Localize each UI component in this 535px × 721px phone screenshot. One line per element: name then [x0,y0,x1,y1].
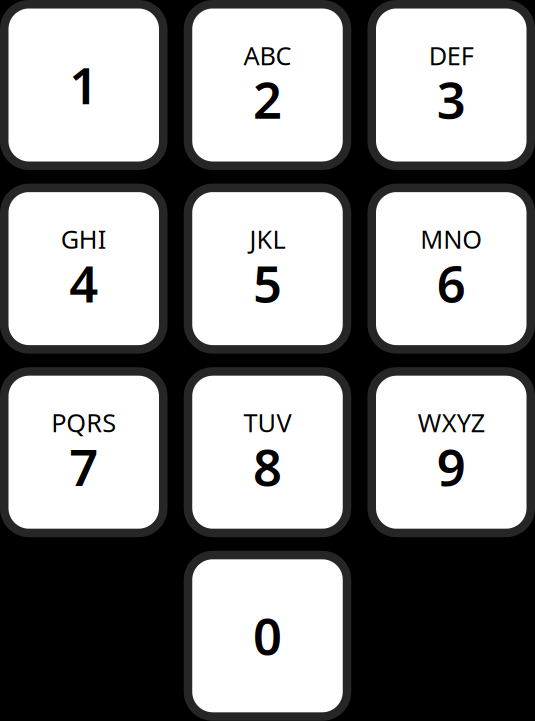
button[interactable]: TUV [184,367,351,537]
button[interactable]: 1 [0,0,167,170]
button[interactable]: GHI [0,184,167,354]
staticText: 3 [437,65,466,133]
button[interactable]: PQRS [0,367,167,537]
button[interactable]: MNO [367,184,535,354]
button[interactable]: ABC [184,0,351,170]
staticText: 8 [253,433,282,500]
staticText: 6 [437,249,466,316]
staticText: PQRS [51,406,116,439]
staticText: 2 [253,65,282,133]
button[interactable]: 0 [184,551,351,721]
staticText: 5 [253,249,282,316]
button[interactable]: WXYZ [367,367,535,537]
staticText: GHI [61,222,107,256]
button[interactable]: JKL [184,184,351,354]
staticText: 4 [69,249,98,316]
staticText: DEF [429,38,474,72]
staticText: 1 [69,51,98,118]
staticText: 9 [437,433,466,500]
staticText: 7 [69,433,98,500]
button[interactable]: DEF [367,0,535,170]
staticText: 0 [253,602,282,669]
staticText: JKL [249,222,285,256]
staticText: WXYZ [418,406,485,439]
staticText: ABC [243,38,291,72]
staticText: TUV [243,406,291,439]
staticText: MNO [420,222,482,256]
